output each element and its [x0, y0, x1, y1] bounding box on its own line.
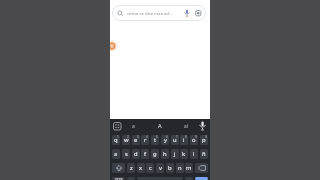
button[interactable]: f — [141, 149, 149, 159]
staticText: g — [153, 150, 157, 158]
button[interactable]: b — [166, 163, 174, 173]
staticText: ñ — [202, 150, 206, 158]
staticText: v — [159, 164, 162, 172]
button[interactable]: m — [185, 163, 193, 173]
staticText: y — [164, 136, 167, 144]
button[interactable]: s — [122, 149, 130, 159]
staticText: o — [192, 136, 196, 144]
button[interactable]: w — [122, 135, 130, 145]
staticText: q — [114, 136, 118, 144]
button[interactable]: A — [158, 122, 162, 130]
button[interactable]: v — [156, 163, 164, 173]
button[interactable] — [110, 39, 120, 53]
staticText: e — [134, 136, 138, 144]
button[interactable]: h — [161, 149, 169, 159]
staticText: 6 — [166, 135, 168, 139]
staticText: l — [193, 150, 195, 158]
staticText: 8 — [185, 135, 187, 139]
button[interactable]: ?123 — [112, 177, 125, 180]
staticText: ?123 — [115, 177, 123, 180]
button[interactable]: . — [185, 177, 193, 180]
staticText: 7 — [176, 135, 178, 139]
button[interactable]: a — [132, 123, 135, 130]
staticText: x — [139, 164, 143, 172]
staticText: h — [163, 150, 167, 158]
button[interactable]: k — [180, 149, 188, 159]
button[interactable]: c — [146, 163, 154, 173]
staticText: t — [154, 136, 157, 144]
button[interactable] — [195, 163, 208, 173]
staticText: j — [174, 150, 176, 158]
button[interactable] — [113, 122, 122, 131]
button[interactable]: d — [132, 149, 140, 159]
button[interactable] — [199, 121, 206, 131]
staticText: s — [125, 150, 128, 158]
staticText: 4 — [146, 135, 148, 139]
staticText: k — [182, 150, 186, 158]
staticText: d — [134, 150, 138, 158]
button[interactable] — [112, 163, 125, 173]
staticText: 0 — [205, 135, 207, 139]
staticText: p — [202, 136, 206, 144]
button[interactable] — [195, 177, 208, 180]
staticText: i — [183, 136, 185, 144]
staticText: 2 — [127, 135, 129, 139]
staticText: r — [144, 136, 147, 144]
button[interactable]: r — [141, 135, 149, 145]
button[interactable]: a — [112, 149, 120, 159]
button[interactable]: x — [137, 163, 145, 173]
button[interactable]: ñ — [200, 149, 208, 159]
button[interactable]: e — [132, 135, 140, 145]
staticText: f — [144, 150, 146, 158]
staticText: b — [168, 164, 172, 172]
button[interactable]: l — [190, 149, 198, 159]
staticText: 5 — [156, 135, 158, 139]
button[interactable]: q — [112, 135, 120, 145]
staticText: cómo se dice esta ad... — [127, 10, 184, 16]
button[interactable]: p — [200, 135, 208, 145]
staticText: w — [124, 136, 129, 144]
button[interactable]: cómo se dice esta ad... — [112, 5, 206, 21]
staticText: m — [186, 164, 192, 172]
staticText: 1 — [117, 135, 119, 139]
staticText: n — [178, 164, 182, 172]
button[interactable]: al — [184, 123, 188, 130]
button[interactable]: i — [180, 135, 188, 145]
staticText: z — [130, 164, 133, 172]
staticText: u — [173, 136, 177, 144]
staticText: 3 — [137, 135, 139, 139]
button[interactable]: y — [161, 135, 169, 145]
staticText: c — [149, 164, 152, 172]
button[interactable]: , — [127, 177, 135, 180]
button[interactable]: j — [171, 149, 179, 159]
button[interactable]: t — [151, 135, 159, 145]
button[interactable]: n — [176, 163, 184, 173]
staticText: 9 — [195, 135, 197, 139]
button[interactable]: g — [151, 149, 159, 159]
button[interactable]: z — [127, 163, 135, 173]
staticText: a — [114, 150, 118, 158]
button[interactable]: u — [171, 135, 179, 145]
button[interactable]: o — [190, 135, 198, 145]
